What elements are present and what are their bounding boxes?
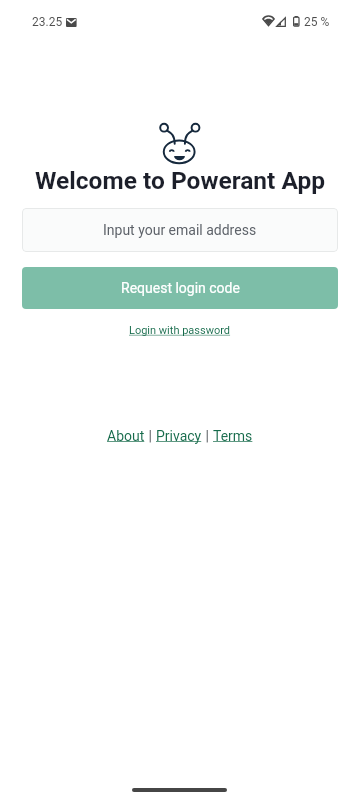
staticText: Request login code [121,280,240,296]
staticText: 23.25 [32,15,63,29]
other: Mobile signal [276,17,287,28]
button[interactable]: About [107,428,145,444]
other: Wi-Fi [262,16,275,27]
staticText: 25 % [304,15,330,29]
staticText: | [202,428,213,444]
staticText: Input your email address [103,222,257,238]
button[interactable]: Input your email address [22,208,338,252]
button[interactable]: Privacy [156,428,202,444]
other: Battery 25 percent [293,16,300,27]
other: Powerant logo [158,120,202,166]
button[interactable]: Login with password [129,324,231,337]
staticText: | [145,428,156,444]
button[interactable]: Request login code [22,267,338,309]
other: Unread mail [66,18,77,28]
button[interactable]: Terms [213,428,253,444]
staticText: Welcome to Powerant App [0,166,360,195]
